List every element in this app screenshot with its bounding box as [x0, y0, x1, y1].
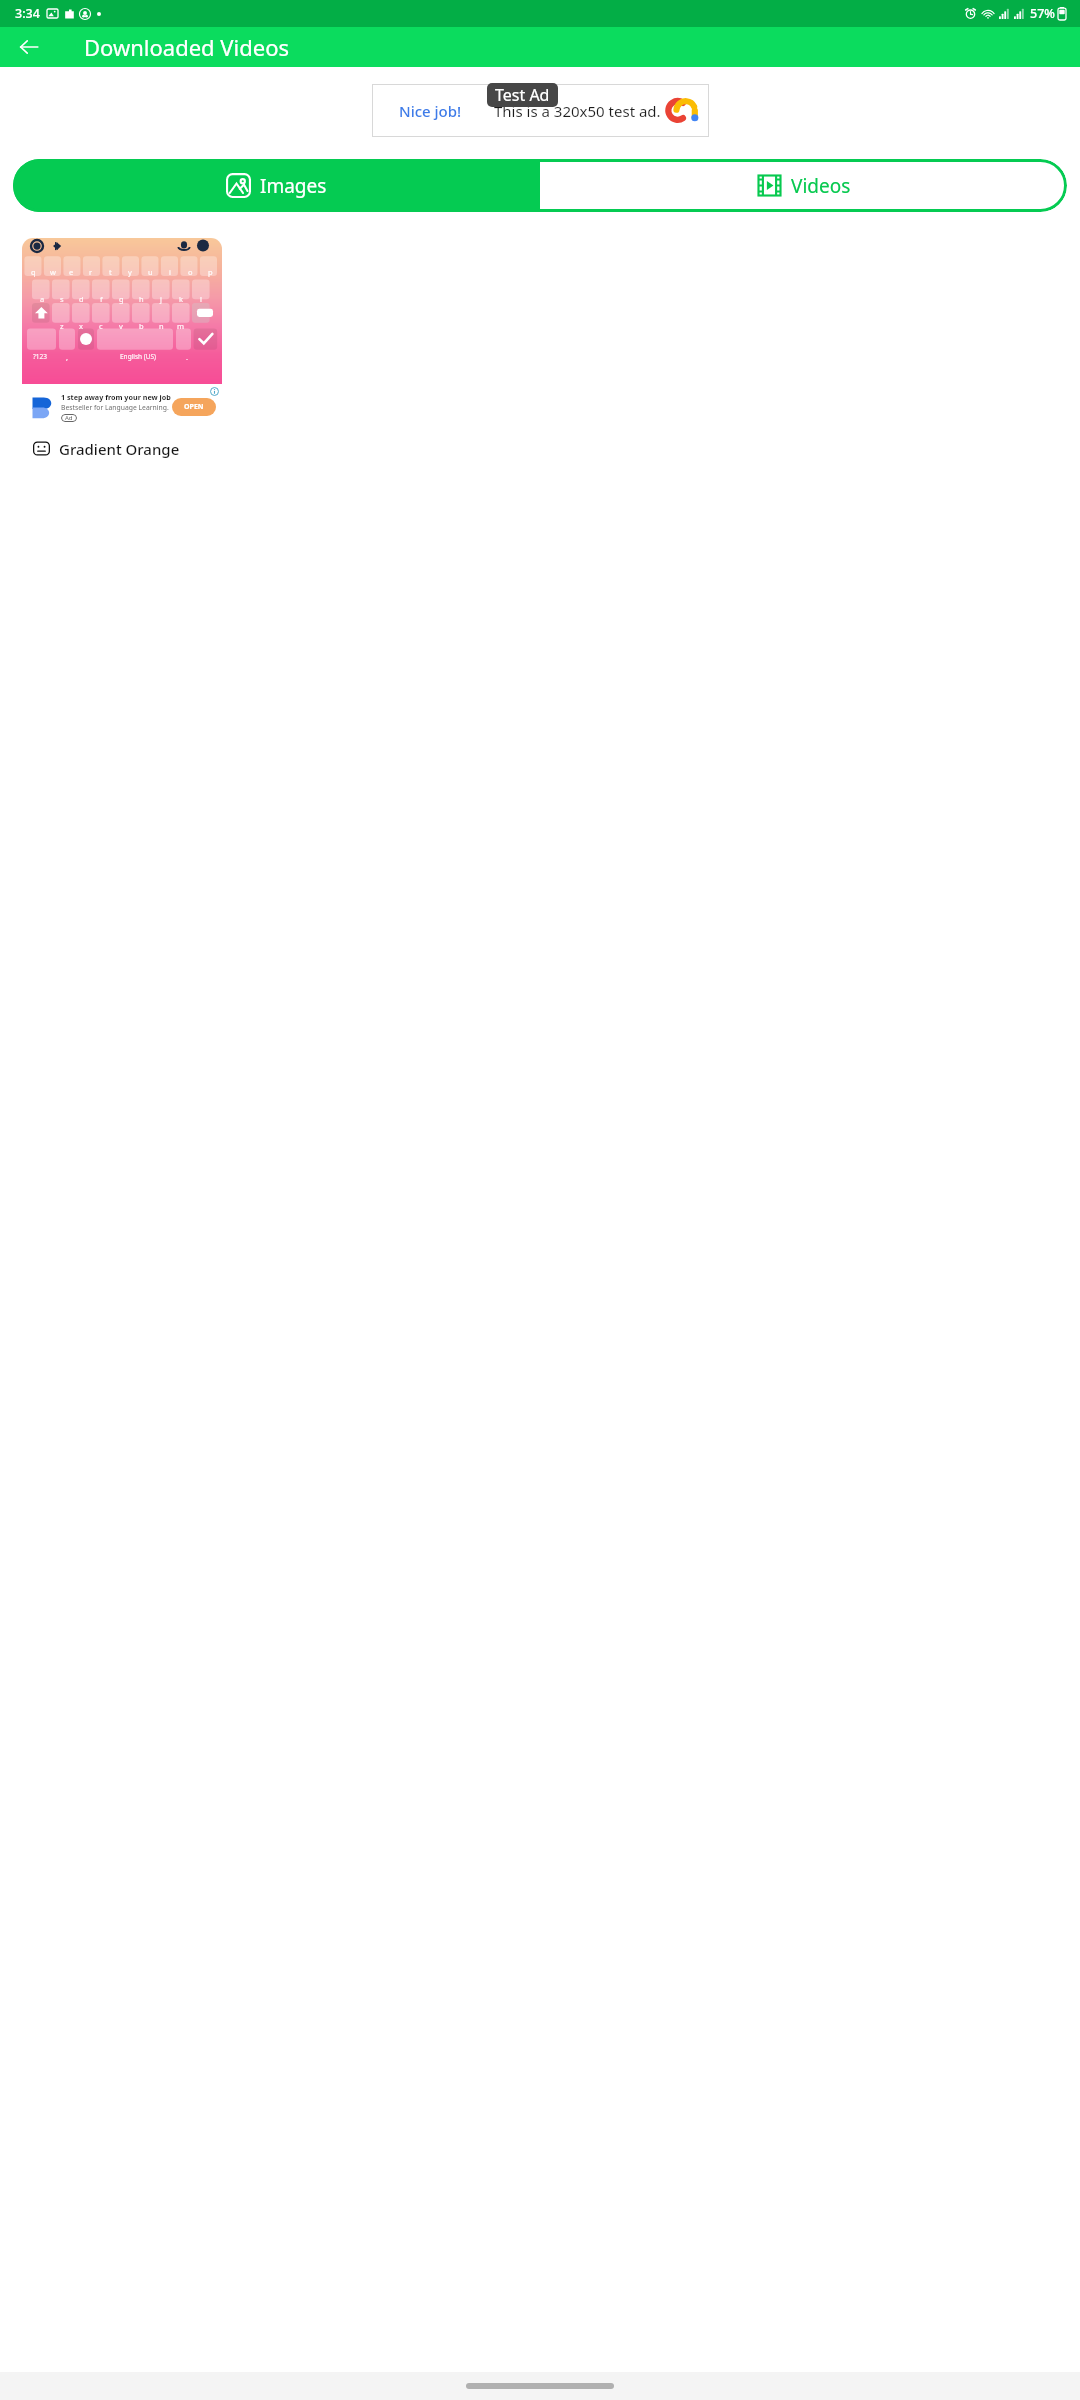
staticText: Ad [65, 414, 73, 422]
staticText: o [188, 267, 193, 277]
button[interactable]: OPEN [172, 398, 216, 416]
staticText: , [66, 352, 69, 362]
staticText: Videos [791, 173, 851, 199]
staticText: OPEN [184, 402, 204, 412]
staticText: z [60, 321, 64, 331]
staticText: q [31, 267, 36, 277]
staticText: t [109, 267, 112, 277]
staticText: Gradient Orange [59, 439, 180, 459]
staticText: Nice job! [399, 101, 462, 121]
staticText: k [179, 294, 184, 304]
staticText: n [159, 321, 164, 331]
staticText: j [160, 294, 162, 304]
staticText: English (US) [120, 352, 157, 361]
staticText: 57% [1030, 5, 1055, 22]
button[interactable]: Images [13, 159, 540, 212]
staticText: 3:34 [15, 5, 40, 22]
staticText: b [139, 321, 144, 331]
button[interactable]: Back [7, 27, 51, 67]
button[interactable]: Videos [540, 159, 1067, 212]
staticText: s [60, 294, 64, 304]
staticText: y [128, 267, 132, 277]
staticText: f [100, 294, 103, 304]
staticText: ?123 [33, 352, 47, 361]
button[interactable]: q [22, 238, 222, 467]
staticText: p [208, 267, 213, 277]
staticText: m [177, 321, 185, 331]
staticText: g [119, 294, 124, 304]
staticText: h [139, 294, 144, 304]
button[interactable]: Nice job! [372, 84, 709, 137]
staticText: . [186, 352, 189, 362]
staticText: Bestseller for Language Learning. [61, 403, 169, 412]
staticText: Test Ad [495, 84, 550, 106]
staticText: x [79, 321, 83, 331]
staticText: e [69, 267, 74, 277]
staticText: w [50, 267, 56, 277]
button[interactable]: 1 step away from your new job [22, 384, 222, 430]
staticText: Images [260, 173, 327, 199]
staticText: This is a 320x50 test ad. [494, 101, 661, 121]
staticText: Downloaded Videos [84, 32, 289, 62]
staticText: r [89, 267, 93, 277]
staticText: a [40, 294, 45, 304]
staticText: i [169, 267, 171, 277]
staticText: l [200, 294, 202, 304]
staticText: 1 step away from your new job [61, 392, 171, 402]
staticText: u [148, 267, 153, 277]
staticText: v [119, 321, 123, 331]
staticText: c [99, 321, 103, 331]
staticText: d [79, 294, 84, 304]
